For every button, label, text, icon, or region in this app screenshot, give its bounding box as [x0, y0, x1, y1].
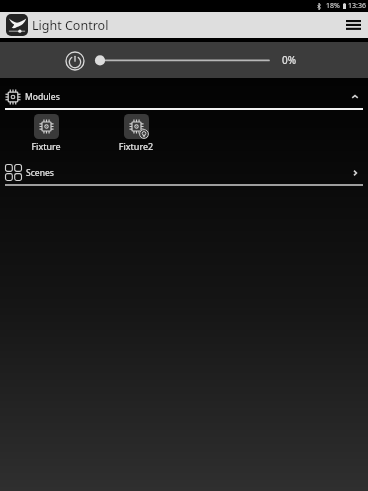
button[interactable]: Fixture2 — [106, 110, 166, 152]
button[interactable]: Power — [64, 42, 85, 78]
staticText: 13:36 — [348, 1, 366, 11]
staticText: Fixture2 — [106, 140, 166, 152]
button[interactable]: Light Control app icon — [6, 14, 28, 36]
staticText: Fixture — [16, 140, 76, 152]
staticText: 18% — [326, 1, 340, 11]
button[interactable]: Fixture — [16, 110, 76, 152]
button[interactable]: Scenes — [0, 161, 368, 186]
button[interactable]: Menu — [338, 12, 368, 38]
staticText: Modules — [25, 91, 60, 103]
button[interactable]: Modules — [0, 80, 368, 110]
staticText: 0% — [282, 53, 297, 67]
staticText: Light Control — [32, 17, 109, 34]
button[interactable]: Brightness slider — [92, 42, 277, 78]
staticText: Scenes — [26, 167, 54, 179]
